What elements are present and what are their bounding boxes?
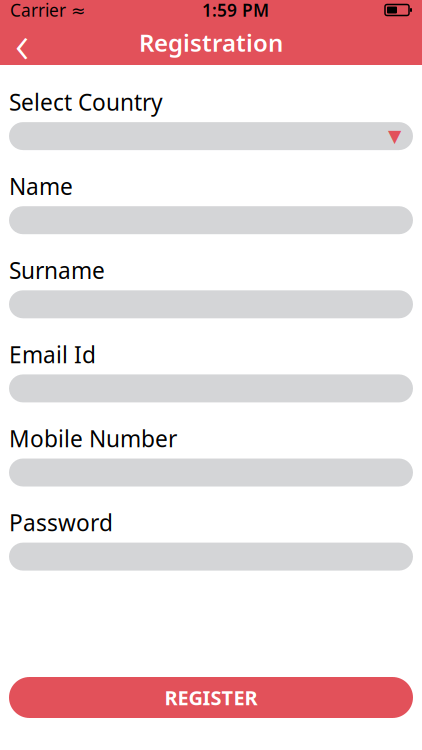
staticText: Name (9, 171, 73, 201)
button[interactable]: Back (0, 20, 44, 64)
button[interactable]: REGISTER (9, 677, 413, 718)
staticText: Select Country (9, 87, 163, 117)
staticText: REGISTER (164, 684, 257, 711)
staticText: Mobile Number (9, 423, 177, 453)
staticText: 1:59 PM (202, 0, 269, 21)
staticText: ▼ (388, 126, 401, 146)
staticText: Carrier ≈ (10, 0, 86, 21)
staticText: Surname (9, 255, 105, 285)
staticText: Password (9, 507, 113, 538)
staticText: ‹ (15, 7, 29, 78)
staticText: Email Id (9, 339, 96, 369)
staticText: Registration (139, 27, 283, 58)
